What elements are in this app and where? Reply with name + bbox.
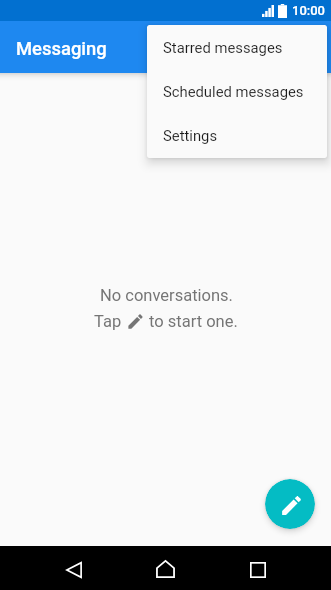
staticText: No conversations. xyxy=(100,286,233,305)
button[interactable]: Starred messages xyxy=(147,25,327,69)
staticText: Settings xyxy=(163,127,218,144)
staticText: 10:00 xyxy=(292,3,326,18)
staticText: to start one. xyxy=(145,312,238,331)
button[interactable]: Settings xyxy=(147,113,327,157)
button[interactable]: New conversation xyxy=(265,479,315,529)
button[interactable]: Scheduled messages xyxy=(147,69,327,113)
button[interactable]: Recent apps xyxy=(239,551,276,588)
staticText: Starred messages xyxy=(163,39,283,56)
staticText: Messaging xyxy=(16,38,107,60)
button[interactable]: Home xyxy=(147,550,184,587)
staticText: Tap xyxy=(94,312,126,331)
staticText: Scheduled messages xyxy=(163,83,304,100)
button[interactable]: Back xyxy=(55,551,92,588)
